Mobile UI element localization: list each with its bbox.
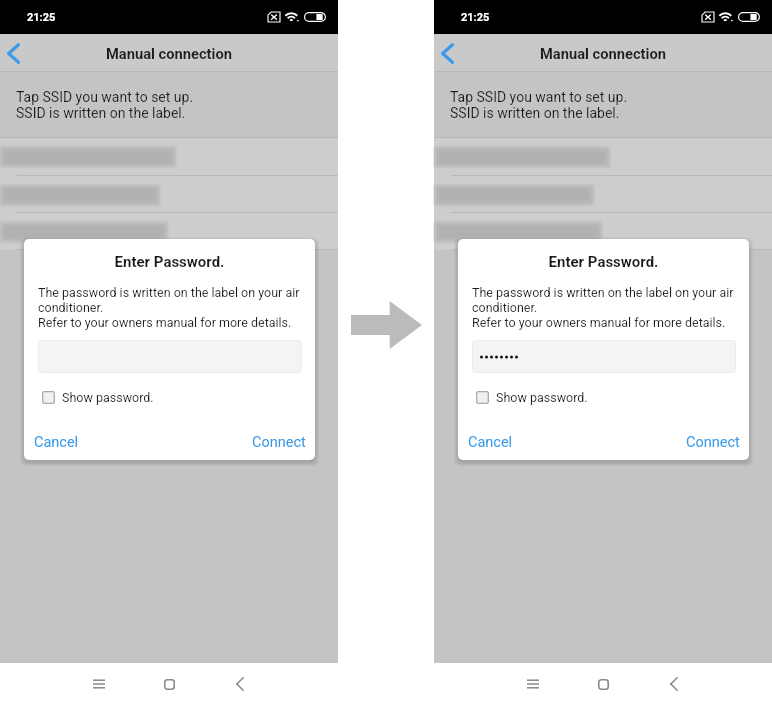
button[interactable]: Show password. (39, 387, 157, 408)
button[interactable]: Home (150, 665, 188, 703)
button[interactable] (434, 176, 772, 213)
button[interactable]: Recent apps (80, 665, 118, 703)
button[interactable]: Home (584, 665, 622, 703)
button[interactable]: Connect (246, 429, 312, 456)
staticText: conditioner. (38, 300, 104, 315)
staticText: Connect (252, 434, 306, 451)
staticText: Cancel (34, 434, 79, 451)
button[interactable]: Cancel (28, 429, 85, 456)
staticText: Manual connection (540, 45, 666, 62)
staticText: SSID is written on the label. (450, 105, 620, 121)
staticText: 21:25 (461, 11, 490, 24)
button[interactable]: Connect (680, 429, 746, 456)
staticText: Manual connection (106, 45, 232, 62)
button[interactable]: Back (0, 34, 26, 72)
button[interactable]: Back (434, 34, 460, 72)
button[interactable] (434, 213, 772, 250)
button[interactable]: Back (655, 665, 693, 703)
staticText: Refer to your owners manual for more det… (472, 315, 726, 330)
staticText: Enter Password. (458, 253, 749, 271)
button[interactable]: Show password. (473, 387, 591, 408)
button[interactable]: Recent apps (514, 665, 552, 703)
staticText: Enter Password. (24, 253, 315, 271)
staticText: The password is written on the label on … (472, 285, 734, 300)
staticText: The password is written on the label on … (38, 285, 300, 300)
staticText: conditioner. (472, 300, 538, 315)
button[interactable]: Cancel (462, 429, 519, 456)
button[interactable] (0, 176, 338, 213)
button[interactable] (0, 138, 338, 176)
staticText: Show password. (62, 390, 154, 405)
staticText: SSID is written on the label. (16, 105, 186, 121)
button[interactable]: Password input field (472, 340, 736, 373)
staticText: Tap SSID you want to set up. (450, 89, 628, 105)
staticText: Tap SSID you want to set up. (16, 89, 194, 105)
staticText: 21:25 (27, 11, 56, 24)
staticText: Cancel (468, 434, 513, 451)
staticText: Connect (686, 434, 740, 451)
staticText: Refer to your owners manual for more det… (38, 315, 292, 330)
staticText: Show password. (496, 390, 588, 405)
button[interactable]: Back (221, 665, 259, 703)
button[interactable] (0, 213, 338, 250)
button[interactable] (434, 138, 772, 176)
